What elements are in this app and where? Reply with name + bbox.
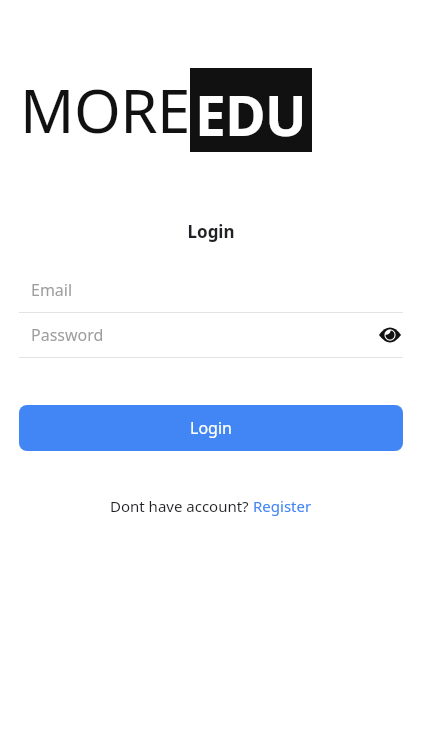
staticText: Login [190, 417, 232, 439]
staticText: Dont have account? [110, 496, 253, 516]
staticText: Register [253, 496, 312, 516]
button[interactable]: Register [253, 496, 312, 516]
button[interactable]: Email [0, 268, 422, 313]
staticText: MORE [20, 69, 190, 151]
button[interactable]: Show password [376, 321, 404, 349]
staticText: Password [31, 324, 104, 346]
button[interactable]: Password [0, 313, 422, 358]
staticText: Login [0, 220, 422, 243]
button[interactable]: Login [19, 405, 403, 451]
staticText: Email [31, 279, 73, 301]
staticText: EDU [195, 77, 307, 143]
